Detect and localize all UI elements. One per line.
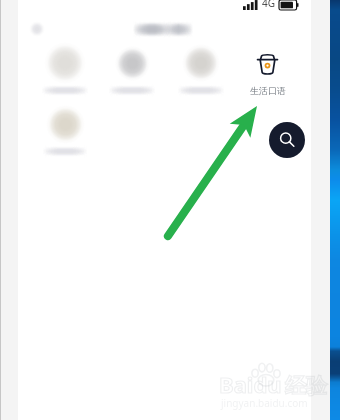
staticText: 生活口语 [238, 85, 298, 96]
staticText: 经验 [285, 373, 327, 399]
staticText: jingyan.baidu.com [221, 396, 308, 410]
button[interactable]: 生活口语 [238, 50, 298, 98]
staticText: Baidu [219, 369, 282, 399]
staticText: 4G [262, 0, 275, 10]
button[interactable]: Search [269, 122, 305, 158]
